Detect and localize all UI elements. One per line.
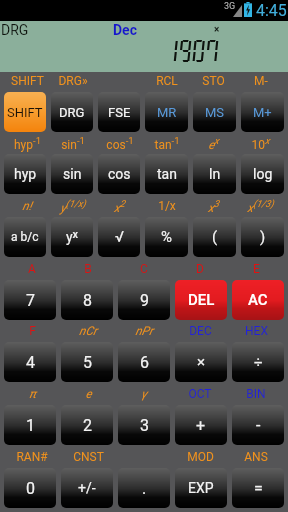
button[interactable]: yˣ	[51, 217, 93, 257]
staticText: nCr	[79, 324, 97, 338]
button[interactable]: 5	[61, 342, 113, 382]
staticText: π	[29, 387, 36, 401]
staticText: Dec	[113, 22, 137, 38]
staticText: BIN	[246, 387, 266, 401]
button[interactable]: tan	[145, 154, 188, 194]
staticText: 1	[26, 416, 35, 435]
button[interactable]: ln	[193, 154, 236, 194]
button[interactable]: +/-	[61, 468, 113, 508]
staticText: DRG	[59, 105, 85, 120]
staticText: 6	[140, 353, 149, 372]
staticText: C	[140, 262, 148, 276]
staticText: a b/c	[11, 230, 39, 244]
button[interactable]: DEL	[175, 280, 227, 320]
button[interactable]: AC	[232, 280, 284, 320]
staticText: ×	[214, 24, 220, 36]
button[interactable]: 0	[4, 468, 56, 508]
button[interactable]: ÷	[232, 342, 284, 382]
button[interactable]: (	[193, 217, 236, 257]
button[interactable]: FSE	[98, 92, 140, 132]
staticText: B	[84, 262, 92, 276]
button[interactable]: 2	[61, 405, 113, 445]
staticText: n!	[22, 199, 32, 213]
staticText: log	[253, 166, 273, 182]
staticText: A	[28, 262, 36, 276]
button[interactable]: 4	[4, 342, 56, 382]
staticText: D	[196, 262, 204, 276]
staticText: +/-	[78, 480, 96, 496]
button[interactable]: M+	[241, 92, 284, 132]
staticText: DRG»	[58, 74, 88, 88]
button[interactable]: +	[175, 405, 227, 445]
staticText: e	[85, 387, 92, 401]
staticText: 0	[26, 479, 35, 498]
staticText: M-	[254, 74, 268, 88]
staticText: yˣ	[66, 229, 79, 245]
staticText: 10x	[251, 135, 270, 152]
button[interactable]: %	[145, 217, 188, 257]
staticText: 7	[26, 291, 35, 310]
staticText: x3	[208, 198, 219, 215]
staticText: nPr	[135, 324, 153, 338]
button[interactable]: 9	[118, 280, 170, 320]
staticText: hyp	[14, 166, 37, 182]
staticText: MOD	[187, 450, 214, 464]
staticText: 5	[83, 353, 92, 372]
staticText: cos-1	[106, 135, 134, 152]
button[interactable]: MR	[145, 92, 188, 132]
button[interactable]: √	[98, 217, 140, 257]
staticText: ÷	[254, 353, 263, 371]
staticText: y(1/x)	[60, 198, 86, 215]
button[interactable]: SHIFT	[4, 92, 46, 132]
button[interactable]: sin	[51, 154, 93, 194]
button[interactable]: 7	[4, 280, 56, 320]
button[interactable]: 1	[4, 405, 56, 445]
staticText: tan-1	[154, 135, 180, 152]
staticText: cos	[108, 166, 131, 182]
button[interactable]: MS	[193, 92, 236, 132]
staticText: EXP	[188, 480, 214, 496]
staticText: 8	[83, 291, 92, 310]
staticText: %	[161, 228, 172, 246]
staticText: CNST	[73, 450, 104, 464]
staticText: 3G	[224, 1, 236, 12]
button[interactable]: cos	[98, 154, 140, 194]
button[interactable]: 3	[118, 405, 170, 445]
staticText: RAN#	[16, 450, 48, 464]
staticText: AC	[248, 291, 268, 309]
staticText: MS	[205, 105, 225, 120]
button[interactable]: .	[118, 468, 170, 508]
staticText: ANS	[244, 450, 268, 464]
staticText: HEX	[245, 324, 268, 338]
staticText: (	[212, 228, 218, 246]
staticText: RCL	[156, 74, 178, 88]
staticText: +	[196, 416, 206, 435]
staticText: MR	[157, 105, 177, 120]
staticText: sin-1	[61, 135, 85, 152]
staticText: ex	[208, 135, 219, 152]
staticText: =	[254, 479, 263, 498]
staticText: F	[29, 324, 36, 338]
staticText: 9	[140, 291, 149, 310]
staticText: x2	[114, 198, 125, 215]
button[interactable]: )	[241, 217, 284, 257]
button[interactable]: log	[241, 154, 284, 194]
button[interactable]: 8	[61, 280, 113, 320]
staticText: FSE	[108, 105, 131, 120]
staticText: sin	[63, 166, 82, 182]
button[interactable]: 6	[118, 342, 170, 382]
button[interactable]: EXP	[175, 468, 227, 508]
staticText: DRG	[1, 22, 29, 38]
button[interactable]: hyp	[4, 154, 46, 194]
staticText: 2	[83, 416, 92, 435]
staticText: tan	[157, 166, 177, 182]
button[interactable]: DRG	[51, 92, 93, 132]
button[interactable]: a b/c	[4, 217, 46, 257]
button[interactable]: ×	[175, 342, 227, 382]
staticText: 4:45	[256, 1, 287, 20]
button[interactable]: =	[232, 468, 284, 508]
staticText: 4	[26, 353, 35, 372]
staticText: ln	[209, 166, 221, 182]
staticText: SHIFT	[11, 74, 44, 88]
button[interactable]: -	[232, 405, 284, 445]
